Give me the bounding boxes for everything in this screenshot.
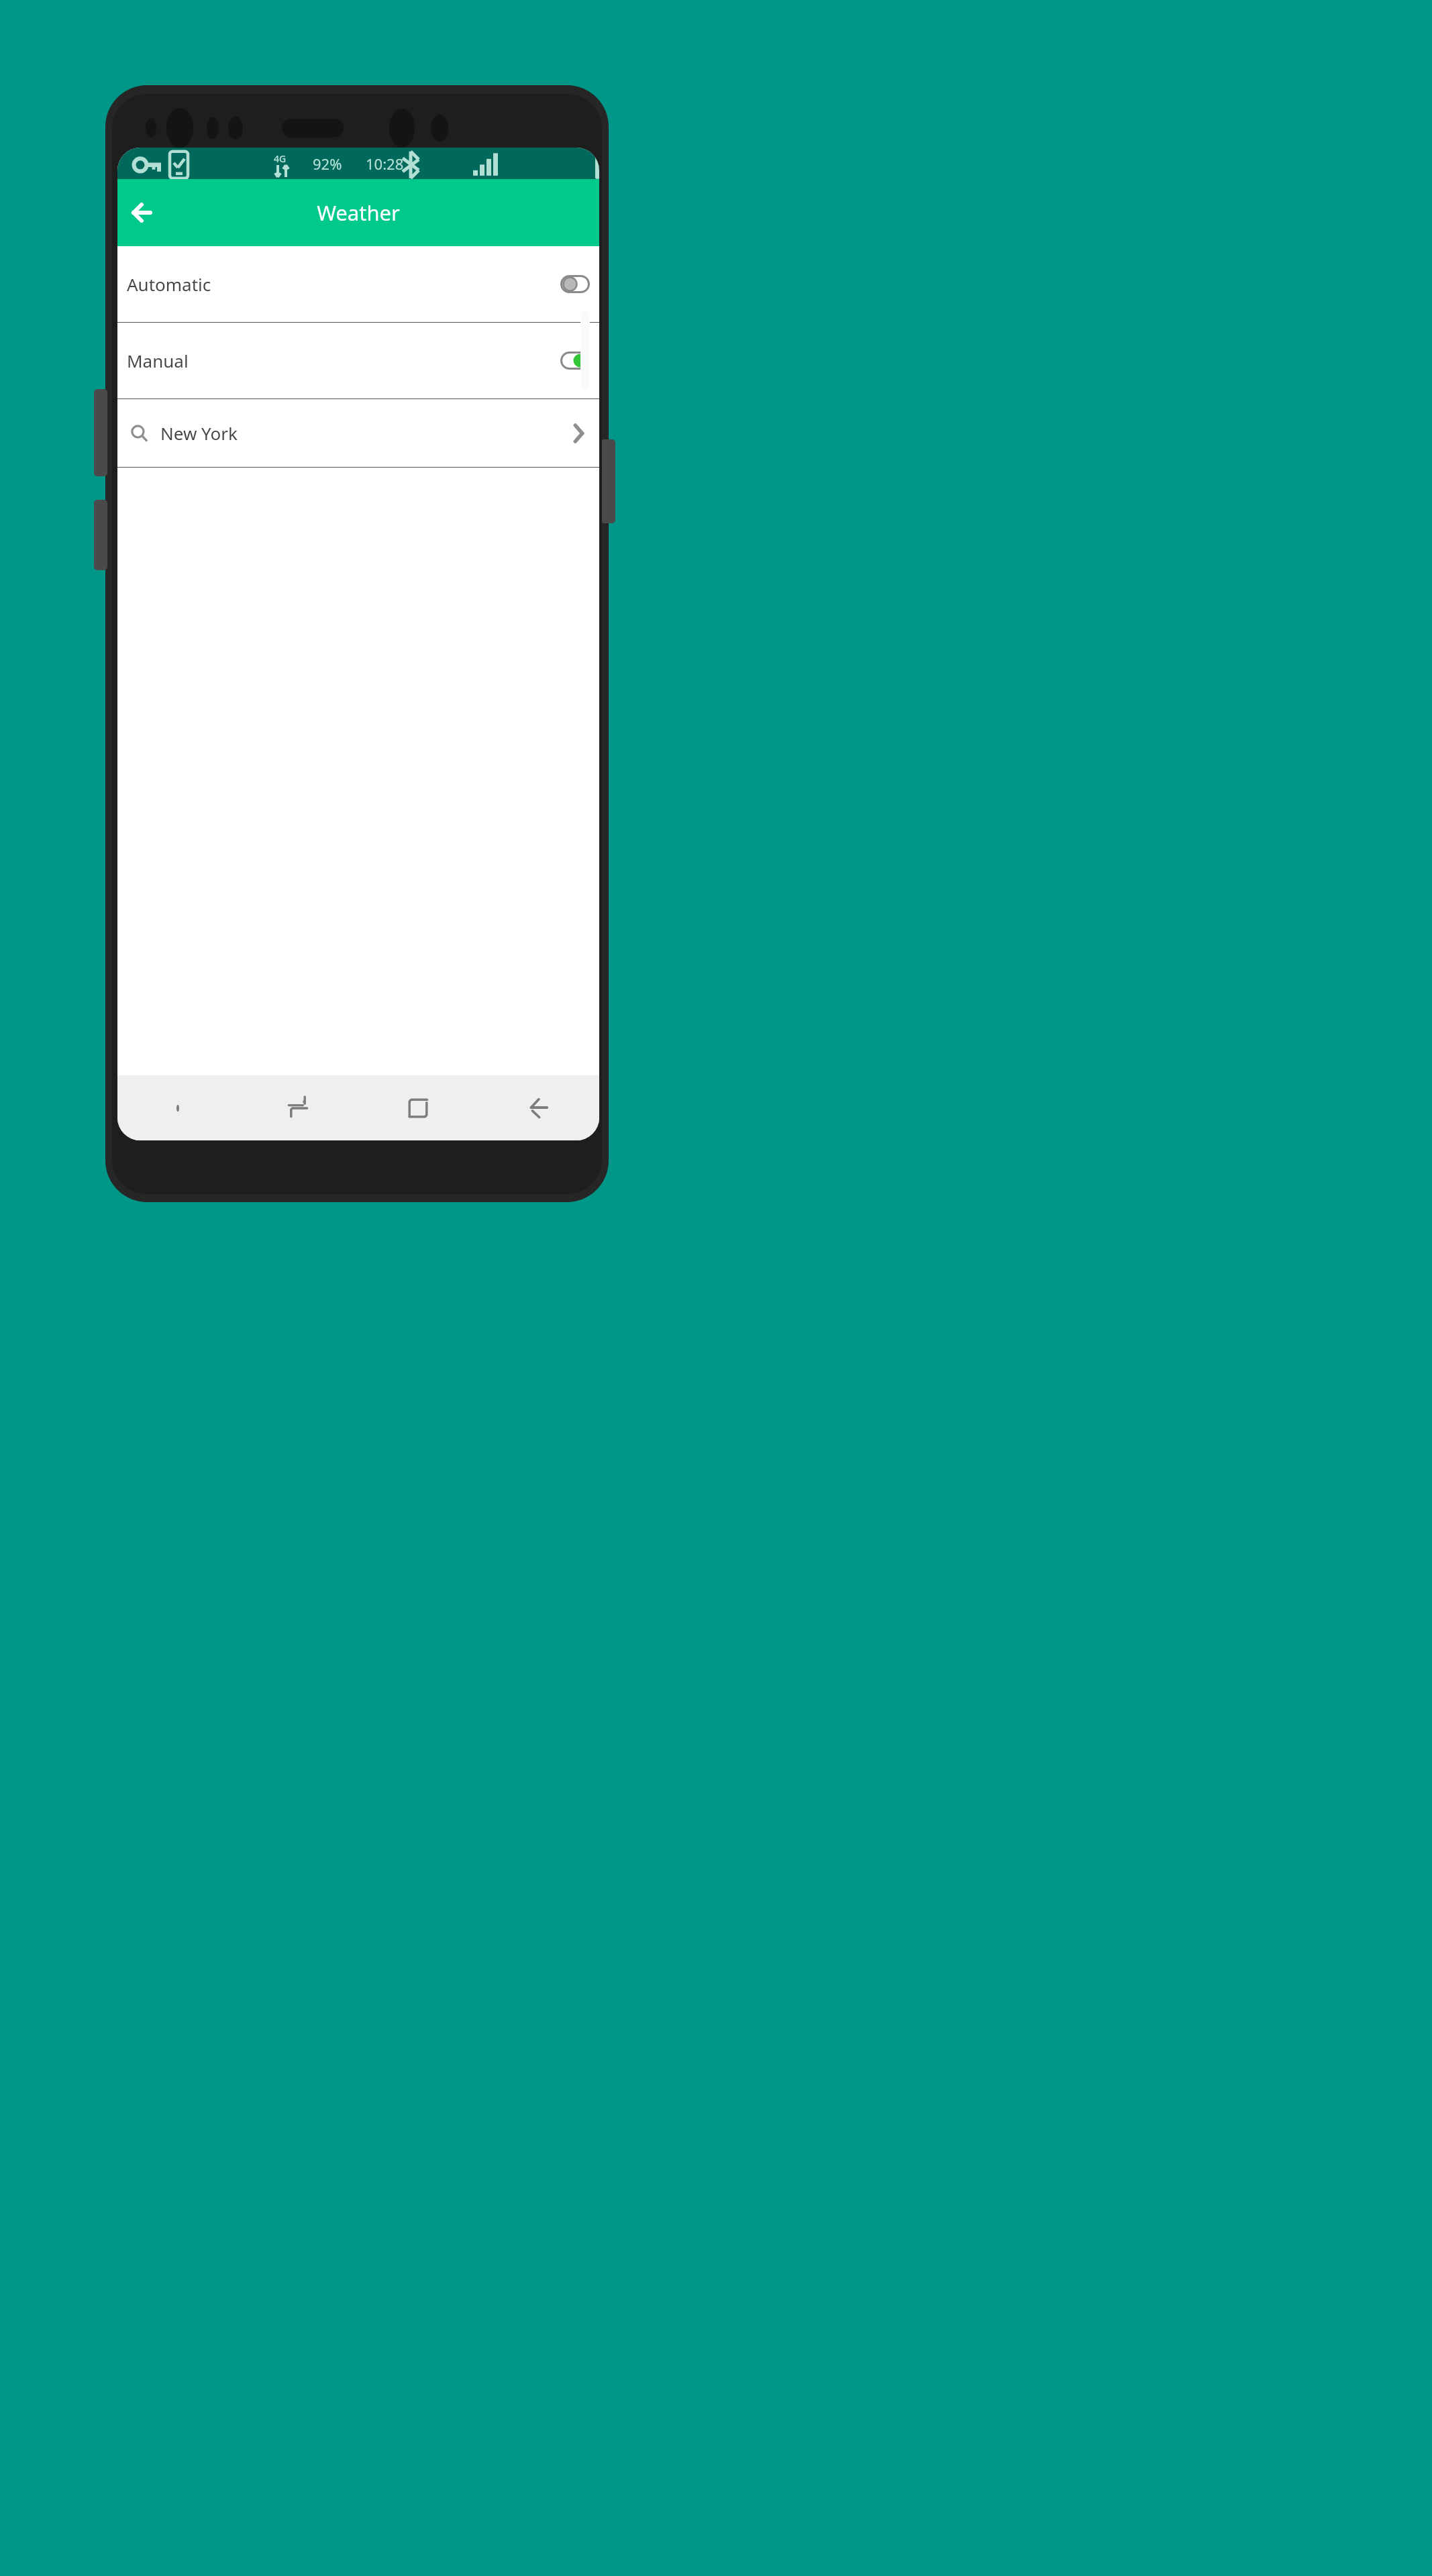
staticText: Automatic	[127, 272, 211, 296]
staticText: 10:28	[366, 154, 404, 174]
staticText: 92%	[313, 154, 342, 174]
button[interactable]: Home	[358, 1075, 478, 1140]
button[interactable]: Recents	[238, 1075, 358, 1140]
button[interactable]: Automatic	[117, 246, 599, 322]
button[interactable]: Back	[478, 1075, 599, 1140]
staticText: Weather	[317, 199, 400, 227]
button[interactable]: Menu	[117, 1075, 238, 1140]
staticText: 4G	[274, 152, 287, 165]
staticText: New York	[160, 421, 238, 445]
button[interactable]: New York	[117, 399, 599, 467]
button[interactable]: Manual	[117, 323, 599, 398]
button[interactable]: Back	[123, 194, 160, 231]
staticText: Manual	[127, 349, 189, 372]
other: Open	[570, 425, 587, 442]
